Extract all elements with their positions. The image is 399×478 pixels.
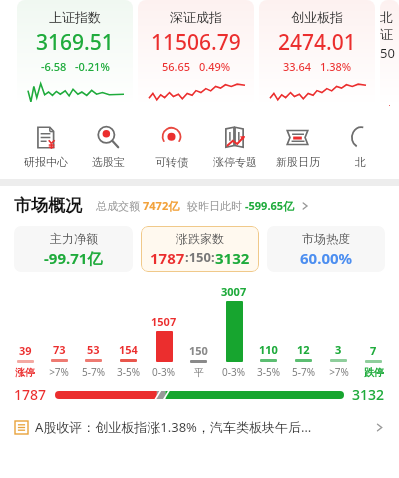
staticText: 可转债 <box>155 155 188 169</box>
staticText: 39 <box>19 343 32 358</box>
button[interactable]: 上证指数 <box>17 0 133 106</box>
staticText: 北证50 <box>380 9 399 62</box>
staticText: 73 <box>53 342 66 357</box>
button[interactable]: 3007 <box>216 284 251 379</box>
button[interactable]: 154 <box>111 284 146 379</box>
staticText: 总成交额 <box>96 199 140 213</box>
staticText: 7472亿 <box>143 198 180 213</box>
staticText: 3132 <box>215 248 250 268</box>
staticText: -99.71亿 <box>44 248 103 268</box>
staticText: 涨跌家数 <box>176 231 224 246</box>
staticText: :150: <box>185 248 215 266</box>
button[interactable]: 涨停专题 <box>203 124 266 169</box>
staticText: 0-3% <box>222 365 245 379</box>
staticText: 涨停 <box>15 366 35 379</box>
staticText: 110 <box>259 342 278 357</box>
staticText: A股收评：创业板指涨1.38%，汽车类板块午后… <box>35 418 368 436</box>
staticText: 创业板指 <box>291 9 343 25</box>
button[interactable]: 1507 <box>146 284 181 379</box>
staticText: 上证指数 <box>49 9 101 25</box>
staticText: 3-5% <box>117 365 140 379</box>
staticText: 3-5% <box>257 365 280 379</box>
staticText: 新股日历 <box>276 155 320 169</box>
staticText: 1787 <box>150 248 185 268</box>
staticText: 5-7% <box>82 365 105 379</box>
staticText: -0.21% <box>75 59 110 74</box>
staticText: 7 <box>370 343 377 358</box>
staticText: 33.64 <box>283 59 312 74</box>
button[interactable]: 涨跌家数 <box>141 226 259 272</box>
button[interactable]: 创业板指 <box>259 0 375 106</box>
staticText: -599.65亿 <box>245 198 295 213</box>
staticText: 154 <box>119 342 138 357</box>
staticText: 1787 <box>14 385 47 404</box>
button[interactable]: 39 <box>8 285 42 379</box>
staticText: 11506.79 <box>151 28 241 57</box>
staticText: 主力净额 <box>50 231 98 246</box>
button[interactable]: 研报中心 <box>14 124 77 169</box>
staticText: 研报中心 <box>24 155 68 169</box>
button[interactable]: A股收评：创业板指涨1.38%，汽车类板块午后… <box>14 412 385 442</box>
staticText: 5-7% <box>292 365 315 379</box>
staticText: 北 <box>355 155 366 169</box>
button[interactable]: 深证成指 <box>138 0 254 106</box>
staticText: 60.00% <box>300 248 353 268</box>
staticText: 1.38% <box>320 59 352 74</box>
staticText: >7% <box>49 365 69 379</box>
staticText: 0.49% <box>199 59 231 74</box>
staticText: 12 <box>297 342 310 357</box>
button[interactable]: 110 <box>251 284 286 379</box>
staticText: 2474.01 <box>278 28 356 57</box>
staticText: 3169.51 <box>36 28 114 57</box>
button[interactable]: 市场概况 <box>14 195 385 216</box>
staticText: 3007 <box>221 284 247 299</box>
button[interactable]: 7 <box>356 285 391 379</box>
button[interactable]: 73 <box>42 284 76 379</box>
button[interactable]: 北 <box>329 124 392 169</box>
button[interactable]: 12 <box>286 284 321 379</box>
staticText: 平 <box>194 366 204 379</box>
button[interactable]: 150 <box>181 285 216 379</box>
button[interactable]: 主力净额 <box>14 226 133 272</box>
button[interactable]: 市场热度 <box>267 226 385 272</box>
button[interactable]: 新股日历 <box>266 124 329 169</box>
staticText: 市场概况 <box>14 195 82 216</box>
staticText: 3132 <box>352 385 385 404</box>
staticText: 56.65 <box>162 59 191 74</box>
button[interactable]: 3 <box>321 284 356 379</box>
staticText: 53 <box>87 342 100 357</box>
staticText: -6.58 <box>41 59 67 74</box>
button[interactable]: 可转债 <box>140 124 203 169</box>
staticText: 深证成指 <box>170 9 222 25</box>
staticText: 3 <box>335 342 342 357</box>
button[interactable]: 北证50 <box>380 0 399 106</box>
staticText: 1507 <box>151 314 177 329</box>
staticText: 0-3% <box>152 365 175 379</box>
staticText: 跌停 <box>364 366 384 379</box>
staticText: 较昨日此时 <box>187 199 242 213</box>
button[interactable]: 选股宝 <box>77 124 140 169</box>
staticText: >7% <box>329 365 349 379</box>
staticText: 市场热度 <box>302 231 350 246</box>
staticText: 选股宝 <box>92 155 125 169</box>
staticText: 150 <box>189 343 208 358</box>
button[interactable]: 53 <box>76 284 111 379</box>
staticText: 涨停专题 <box>213 155 257 169</box>
